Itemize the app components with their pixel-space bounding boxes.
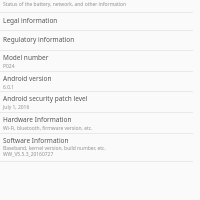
staticText: Hardware Information — [3, 115, 200, 124]
staticText: Status of the battery, network, and othe… — [3, 1, 200, 8]
staticText: P024 — [3, 63, 200, 70]
staticText: Android security patch level — [3, 94, 200, 103]
button[interactable]: Model number — [0, 51, 200, 71]
staticText: July 1, 2016 — [3, 104, 200, 111]
staticText: Legal information — [3, 16, 200, 25]
staticText: Wi-Fi, bluetooth, firmware version, etc. — [3, 125, 200, 132]
staticText: Model number — [3, 53, 200, 62]
staticText: Software Information — [3, 136, 200, 145]
button[interactable]: Regulatory information — [0, 31, 200, 50]
button[interactable]: Android security patch level — [0, 92, 200, 112]
button[interactable]: Hardware Information — [0, 113, 200, 133]
button[interactable]: Legal information — [0, 13, 200, 30]
button[interactable]: Status of the battery, network, and othe… — [0, 0, 200, 12]
staticText: Baseband, kernel version, build number, … — [3, 145, 200, 152]
staticText: Android version — [3, 74, 200, 83]
button[interactable]: Android version — [0, 72, 200, 91]
staticText: 6.0.1 — [3, 84, 200, 91]
button[interactable]: Software Information — [0, 134, 200, 161]
staticText: Regulatory information — [3, 35, 200, 44]
staticText: WW_V5.5.3_20160727 — [3, 151, 200, 158]
